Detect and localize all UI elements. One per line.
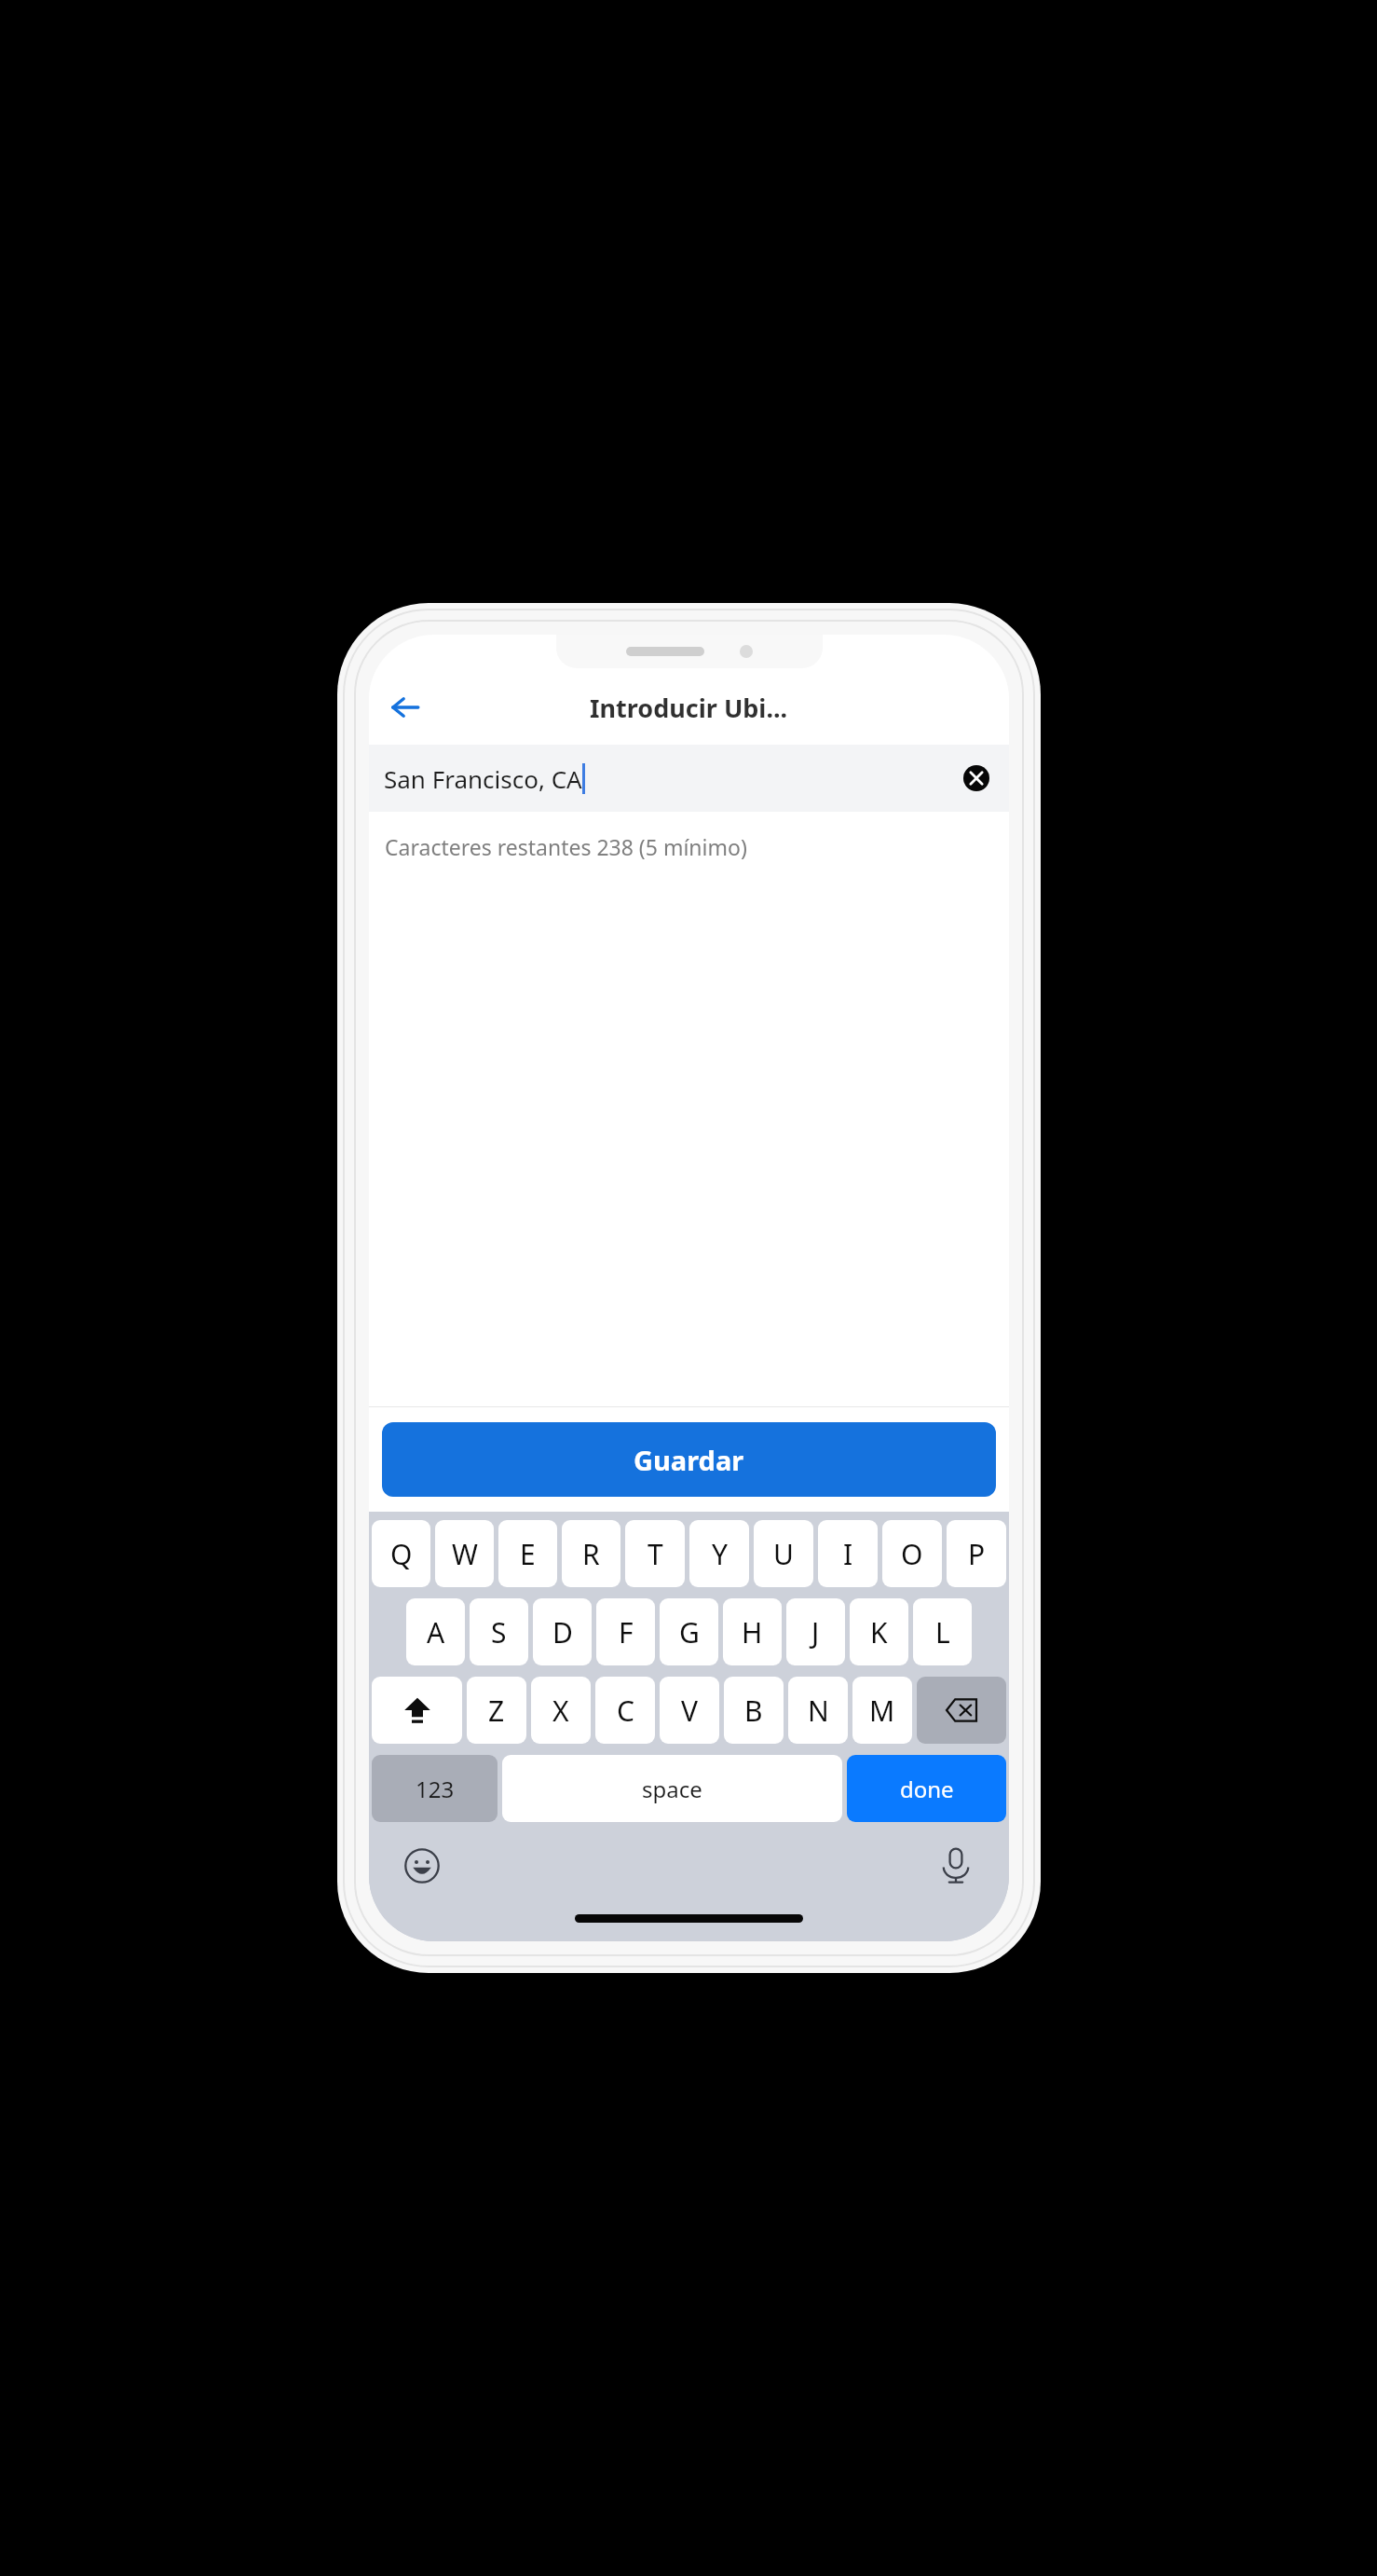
staticText: Z (488, 1692, 505, 1730)
staticText: I (843, 1535, 853, 1573)
button[interactable]: Clear text (957, 759, 996, 798)
button[interactable]: B (724, 1677, 784, 1744)
staticText: done (900, 1774, 954, 1804)
staticText: V (681, 1692, 698, 1730)
button[interactable]: Guardar (382, 1422, 996, 1497)
staticText: space (642, 1774, 702, 1804)
button[interactable]: E (498, 1520, 557, 1587)
staticText: B (744, 1692, 763, 1730)
button[interactable]: R (562, 1520, 620, 1587)
staticText: P (968, 1535, 986, 1573)
staticText: D (552, 1613, 573, 1651)
button[interactable]: G (660, 1598, 718, 1665)
button[interactable]: U (754, 1520, 813, 1587)
button[interactable]: Emoji (393, 1837, 451, 1895)
staticText: Caracteres restantes 238 (5 mínimo) (385, 832, 747, 861)
button[interactable]: L (913, 1598, 972, 1665)
staticText: X (552, 1692, 569, 1730)
staticText: E (520, 1535, 536, 1573)
staticText: F (619, 1613, 634, 1651)
button[interactable]: A (406, 1598, 465, 1665)
staticText: 123 (416, 1774, 455, 1804)
button[interactable]: D (533, 1598, 592, 1665)
button[interactable]: F (596, 1598, 655, 1665)
button[interactable]: O (882, 1520, 942, 1587)
button[interactable]: San Francisco, CA (369, 745, 1009, 812)
button[interactable]: Shift (372, 1677, 462, 1744)
staticText: R (582, 1535, 600, 1573)
button[interactable]: T (625, 1520, 685, 1587)
staticText: J (811, 1613, 820, 1651)
button[interactable]: P (947, 1520, 1006, 1587)
staticText: K (870, 1613, 888, 1651)
button[interactable]: Y (689, 1520, 749, 1587)
staticText: U (773, 1535, 794, 1573)
staticText: C (617, 1692, 634, 1730)
staticText: Guardar (634, 1442, 744, 1478)
staticText: G (679, 1613, 700, 1651)
button[interactable]: done (847, 1755, 1006, 1822)
button[interactable]: N (788, 1677, 848, 1744)
staticText: S (491, 1613, 507, 1651)
staticText: N (808, 1692, 829, 1730)
staticText: L (935, 1613, 950, 1651)
staticText: H (742, 1613, 763, 1651)
staticText: Q (390, 1535, 413, 1573)
staticText: T (648, 1535, 663, 1573)
button[interactable]: C (595, 1677, 655, 1744)
button[interactable]: M (852, 1677, 912, 1744)
staticText: W (452, 1535, 478, 1573)
button[interactable]: I (818, 1520, 878, 1587)
button[interactable]: J (786, 1598, 845, 1665)
button[interactable]: Back (378, 680, 432, 734)
button[interactable]: Q (372, 1520, 430, 1587)
button[interactable]: 123 (372, 1755, 498, 1822)
staticText: San Francisco, CA (384, 762, 582, 795)
button[interactable]: S (470, 1598, 528, 1665)
button[interactable]: H (723, 1598, 782, 1665)
staticText: A (427, 1613, 445, 1651)
staticText: Introducir Ubi... (590, 691, 788, 725)
button[interactable]: Voice input (927, 1837, 985, 1895)
button[interactable]: X (531, 1677, 591, 1744)
staticText: Y (712, 1535, 728, 1573)
button[interactable]: Backspace (917, 1677, 1006, 1744)
button[interactable]: W (435, 1520, 494, 1587)
button[interactable]: V (660, 1677, 719, 1744)
staticText: M (869, 1692, 895, 1730)
button[interactable]: K (850, 1598, 908, 1665)
button[interactable]: space (502, 1755, 842, 1822)
staticText: O (901, 1535, 923, 1573)
button[interactable]: Z (467, 1677, 526, 1744)
